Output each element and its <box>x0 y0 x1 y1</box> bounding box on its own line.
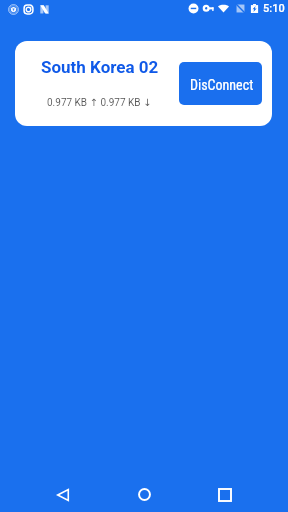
button[interactable]: South Korea 02 <box>15 41 272 126</box>
staticText: South Korea 02 <box>41 57 159 77</box>
staticText: 5:10 <box>263 2 285 15</box>
staticText: DisConnect <box>190 77 254 93</box>
button[interactable]: DisConnect <box>179 62 262 105</box>
button[interactable]: Back <box>38 477 87 512</box>
staticText: 0.977 KB ↑ 0.977 KB ↓ <box>47 97 152 109</box>
button[interactable]: Recents <box>200 477 249 512</box>
button[interactable]: Home <box>120 477 169 512</box>
